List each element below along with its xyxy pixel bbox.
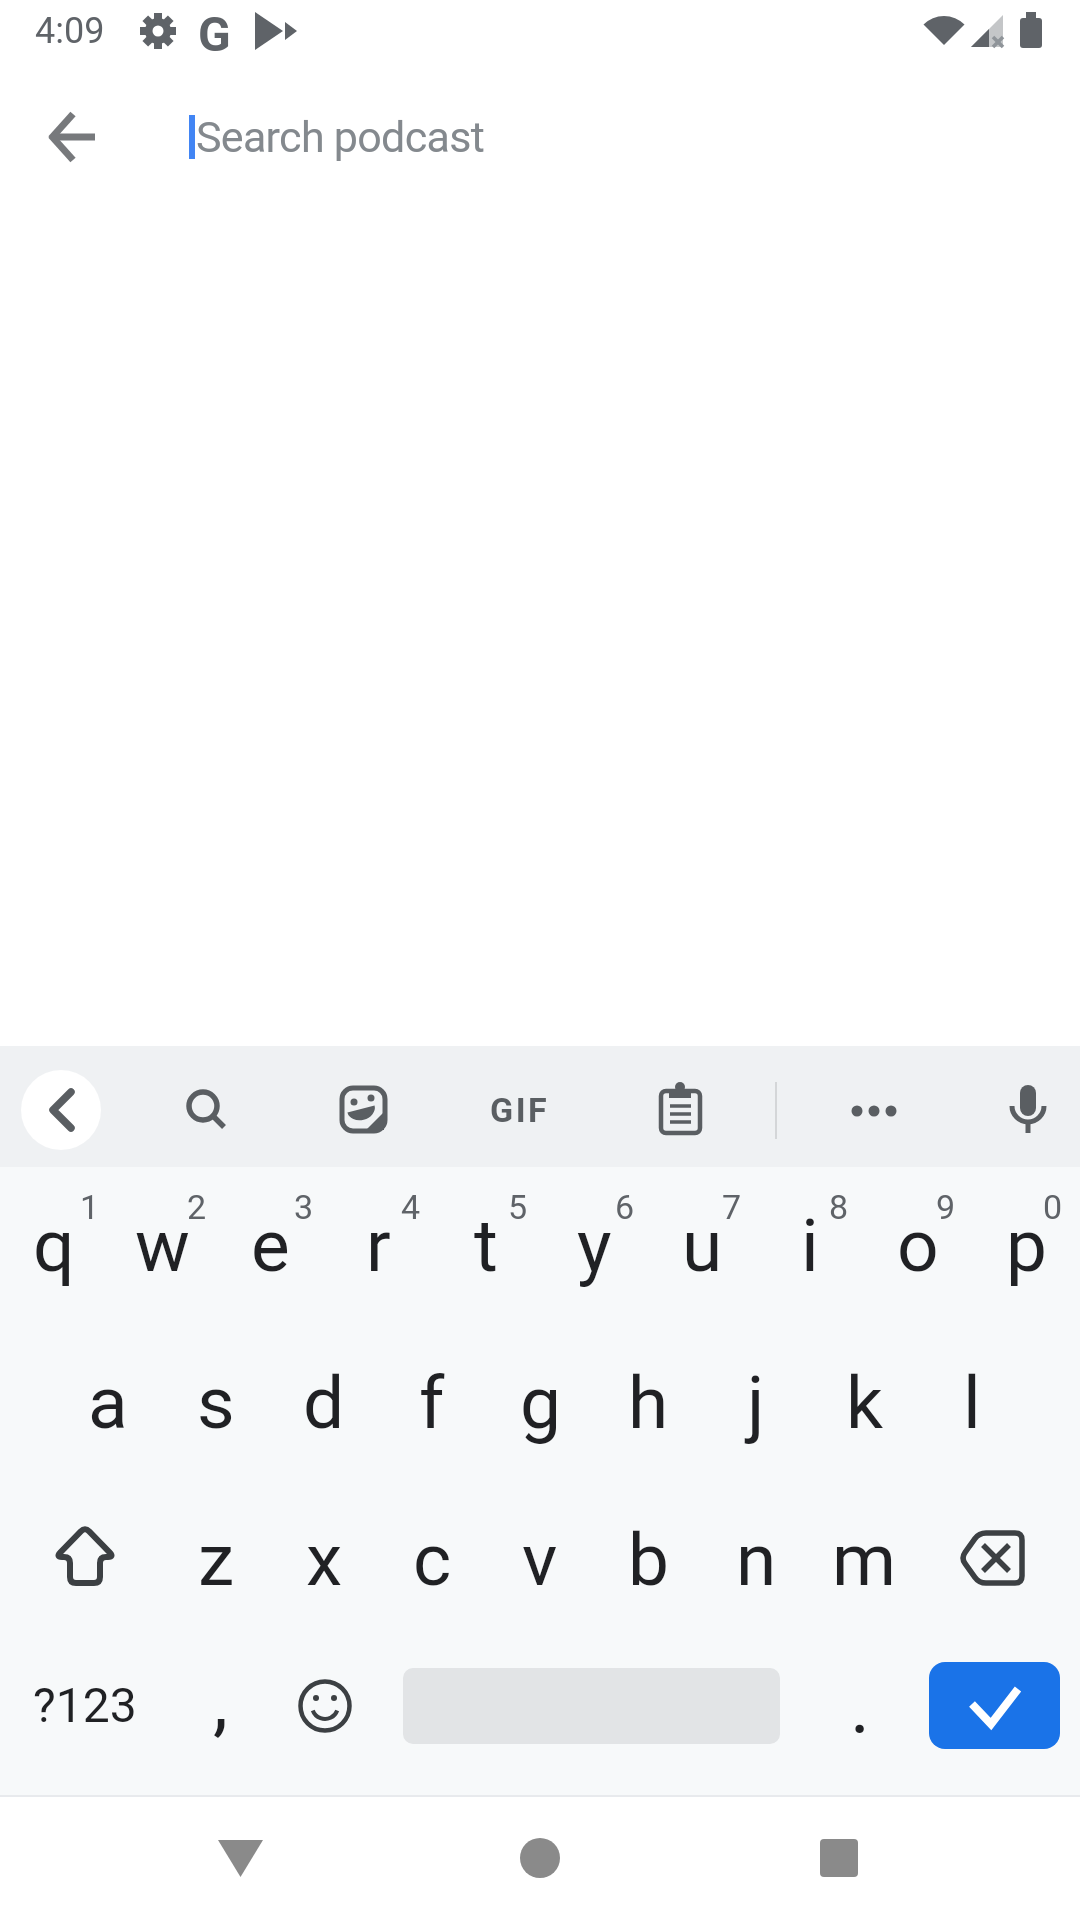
staticText: c <box>413 1517 452 1603</box>
staticText: b <box>628 1517 669 1603</box>
button[interactable]: h <box>594 1324 702 1481</box>
button[interactable]: c <box>378 1481 486 1638</box>
button[interactable] <box>180 1800 300 1920</box>
button[interactable] <box>929 1662 1060 1749</box>
staticText: a <box>88 1360 128 1446</box>
button[interactable]: e <box>216 1167 324 1324</box>
button[interactable] <box>480 1800 600 1920</box>
button[interactable] <box>918 1481 1080 1638</box>
staticText: u <box>682 1203 723 1289</box>
staticText: o <box>897 1203 939 1289</box>
button[interactable]: j <box>702 1324 810 1481</box>
staticText: f <box>419 1360 445 1446</box>
button[interactable]: u <box>648 1167 756 1324</box>
staticText: 8 <box>829 1187 849 1227</box>
staticText: i <box>801 1203 819 1289</box>
button[interactable]: t <box>432 1167 540 1324</box>
button[interactable]: l <box>918 1324 1026 1481</box>
button[interactable] <box>636 1065 726 1155</box>
button[interactable]: p <box>972 1167 1080 1324</box>
button[interactable]: w <box>108 1167 216 1324</box>
staticText: y <box>577 1203 612 1289</box>
button[interactable]: d <box>270 1324 378 1481</box>
button[interactable] <box>21 1070 101 1150</box>
staticText: 4 <box>401 1187 421 1227</box>
button[interactable]: g <box>486 1324 594 1481</box>
staticText: 0 <box>1043 1187 1063 1227</box>
button[interactable] <box>270 1638 380 1795</box>
staticText: 2 <box>187 1187 207 1227</box>
staticText: w <box>135 1203 190 1289</box>
staticText: d <box>303 1360 345 1446</box>
staticText: m <box>832 1517 897 1603</box>
staticText: , <box>213 1656 228 1745</box>
staticText: G <box>198 6 231 58</box>
button[interactable]: b <box>594 1481 702 1638</box>
button[interactable]: n <box>702 1481 810 1638</box>
staticText: e <box>251 1203 290 1289</box>
staticText: 9 <box>936 1187 956 1227</box>
staticText: 7 <box>722 1187 742 1227</box>
button[interactable]: s <box>162 1324 270 1481</box>
staticText: GIF <box>490 1090 550 1130</box>
button[interactable]: ?123 <box>20 1668 150 1742</box>
staticText: 4:09 <box>35 10 105 52</box>
button[interactable]: m <box>810 1481 918 1638</box>
button[interactable] <box>0 1481 162 1638</box>
button[interactable] <box>780 1800 900 1920</box>
button[interactable]: f <box>378 1324 486 1481</box>
staticText: v <box>522 1517 558 1603</box>
staticText: p <box>1006 1203 1047 1289</box>
staticText: 3 <box>294 1187 314 1227</box>
staticText: l <box>963 1360 981 1446</box>
staticText: s <box>197 1360 235 1446</box>
button[interactable] <box>830 1065 920 1155</box>
button[interactable] <box>160 1065 250 1155</box>
staticText: h <box>628 1360 669 1446</box>
staticText: z <box>198 1517 235 1603</box>
button[interactable]: q <box>0 1167 108 1324</box>
staticText: 1 <box>80 1187 100 1227</box>
staticText: . <box>850 1661 871 1750</box>
staticText: x <box>306 1517 343 1603</box>
button[interactable]: y <box>540 1167 648 1324</box>
staticText: t <box>474 1203 498 1289</box>
button[interactable] <box>984 1065 1074 1155</box>
staticText: k <box>846 1360 883 1446</box>
button[interactable]: , <box>180 1640 260 1760</box>
button[interactable] <box>318 1065 408 1155</box>
button[interactable]: i <box>756 1167 864 1324</box>
button[interactable] <box>30 95 115 180</box>
staticText: q <box>33 1203 75 1289</box>
staticText: g <box>520 1360 561 1446</box>
button[interactable]: GIF <box>476 1088 564 1132</box>
button[interactable]: z <box>162 1481 270 1638</box>
staticText: j <box>747 1360 765 1446</box>
staticText: Search podcast <box>196 112 485 162</box>
button[interactable]: v <box>486 1481 594 1638</box>
button[interactable]: r <box>324 1167 432 1324</box>
button[interactable]: o <box>864 1167 972 1324</box>
staticText: n <box>736 1517 777 1603</box>
button[interactable]: k <box>810 1324 918 1481</box>
button[interactable]: x <box>270 1481 378 1638</box>
staticText: r <box>366 1203 391 1289</box>
staticText: ?123 <box>33 1677 137 1733</box>
button[interactable]: a <box>54 1324 162 1481</box>
staticText: 6 <box>615 1187 635 1227</box>
button[interactable]: . <box>820 1645 900 1765</box>
staticText: 5 <box>508 1187 528 1227</box>
